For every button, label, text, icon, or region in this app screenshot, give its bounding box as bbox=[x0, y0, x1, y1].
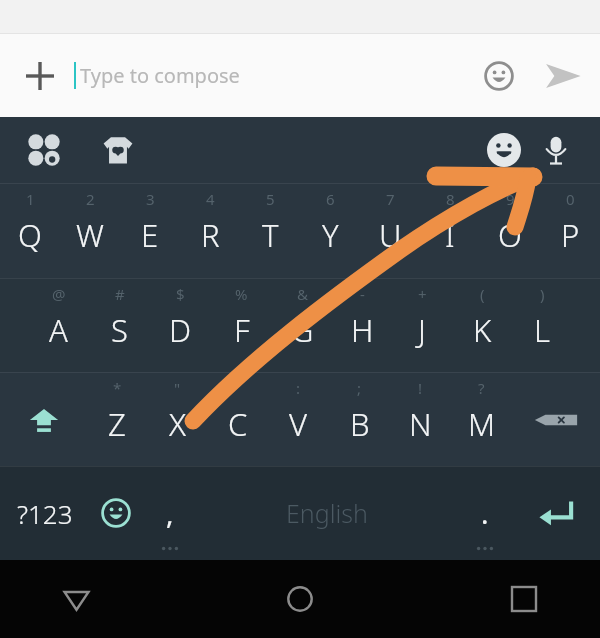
button[interactable]: 9 bbox=[480, 183, 540, 278]
button[interactable]: Add attachment bbox=[16, 52, 64, 100]
button[interactable]: 2 bbox=[60, 183, 120, 278]
staticText: H bbox=[351, 309, 374, 351]
button[interactable]: & bbox=[272, 278, 332, 372]
button[interactable]: 1 bbox=[0, 183, 60, 278]
staticText: E bbox=[141, 214, 159, 256]
button[interactable]: 5 bbox=[240, 183, 300, 278]
staticText: , bbox=[166, 494, 174, 532]
staticText: M bbox=[468, 403, 496, 445]
button[interactable]: - bbox=[332, 278, 392, 372]
staticText: $ bbox=[176, 284, 185, 304]
button[interactable]: 0 bbox=[540, 183, 600, 278]
staticText: F bbox=[234, 309, 250, 351]
staticText: ! bbox=[418, 378, 423, 398]
staticText: 0 bbox=[566, 189, 575, 209]
button[interactable]: Emoji keyboard bbox=[478, 124, 530, 176]
button[interactable]: 7 bbox=[360, 183, 420, 278]
staticText: ) bbox=[540, 284, 545, 304]
staticText: . bbox=[481, 494, 489, 532]
staticText: Y bbox=[322, 214, 339, 256]
staticText: D bbox=[169, 309, 192, 351]
button[interactable]: ( bbox=[452, 278, 512, 372]
staticText: ' bbox=[236, 378, 240, 398]
button[interactable]: Stickers bbox=[18, 124, 70, 176]
button[interactable]: Home bbox=[264, 563, 336, 635]
staticText: Q bbox=[18, 214, 42, 256]
button[interactable]: ; bbox=[329, 372, 390, 466]
button[interactable]: % bbox=[211, 278, 272, 372]
staticText: T bbox=[262, 214, 279, 256]
staticText: N bbox=[409, 403, 432, 445]
staticText: & bbox=[297, 284, 308, 304]
button[interactable]: Emoji bbox=[89, 466, 142, 560]
button[interactable]: : bbox=[268, 372, 329, 466]
button[interactable]: Enter bbox=[512, 466, 600, 560]
button[interactable]: Send bbox=[536, 49, 590, 103]
button[interactable]: + bbox=[392, 278, 452, 372]
staticText: V bbox=[289, 403, 308, 445]
button[interactable]: # bbox=[89, 278, 150, 372]
button[interactable]: ?123 bbox=[0, 466, 89, 560]
staticText: O bbox=[498, 214, 522, 256]
button[interactable]: 4 bbox=[180, 183, 240, 278]
staticText: 4 bbox=[206, 189, 215, 209]
button[interactable]: . bbox=[457, 466, 512, 560]
staticText: W bbox=[76, 214, 104, 256]
staticText: G bbox=[291, 309, 314, 351]
button[interactable]: ! bbox=[390, 372, 451, 466]
staticText: : bbox=[296, 378, 301, 398]
button[interactable]: $ bbox=[150, 278, 211, 372]
staticText: * bbox=[113, 378, 122, 398]
staticText: ; bbox=[357, 378, 362, 398]
button[interactable]: Voice input bbox=[530, 124, 582, 176]
staticText: English bbox=[286, 496, 368, 530]
staticText: A bbox=[49, 309, 68, 351]
button[interactable]: ? bbox=[451, 372, 512, 466]
staticText: C bbox=[228, 403, 248, 445]
staticText: # bbox=[115, 284, 125, 304]
staticText: 3 bbox=[146, 189, 155, 209]
staticText: - bbox=[360, 284, 365, 304]
button[interactable]: Emoji bbox=[474, 51, 524, 101]
button[interactable]: Shift bbox=[0, 372, 87, 466]
staticText: I bbox=[445, 214, 455, 256]
staticText: Type to compose bbox=[80, 62, 240, 89]
button[interactable]: , bbox=[142, 466, 197, 560]
staticText: @ bbox=[52, 284, 66, 304]
staticText: " bbox=[174, 378, 181, 398]
staticText: U bbox=[379, 214, 402, 256]
staticText: K bbox=[473, 309, 492, 351]
button[interactable]: 8 bbox=[420, 183, 480, 278]
button[interactable]: 6 bbox=[300, 183, 360, 278]
staticText: X bbox=[169, 403, 186, 445]
button[interactable]: 3 bbox=[120, 183, 180, 278]
staticText: P bbox=[561, 214, 580, 256]
staticText: Z bbox=[108, 403, 126, 445]
button[interactable]: English bbox=[197, 466, 457, 560]
staticText: + bbox=[418, 284, 427, 304]
staticText: ( bbox=[480, 284, 485, 304]
staticText: 7 bbox=[386, 189, 395, 209]
button[interactable]: Recents bbox=[488, 563, 560, 635]
button[interactable]: @ bbox=[28, 278, 89, 372]
staticText: % bbox=[235, 284, 248, 304]
button[interactable]: Backspace bbox=[512, 372, 600, 466]
staticText: 6 bbox=[326, 189, 335, 209]
button[interactable]: " bbox=[147, 372, 207, 466]
staticText: ?123 bbox=[17, 496, 73, 531]
staticText: 2 bbox=[86, 189, 95, 209]
button[interactable]: * bbox=[87, 372, 147, 466]
staticText: L bbox=[534, 309, 550, 351]
button[interactable]: Shirt stickers bbox=[92, 124, 144, 176]
staticText: 1 bbox=[26, 189, 35, 209]
staticText: S bbox=[111, 309, 128, 351]
staticText: 9 bbox=[506, 189, 515, 209]
button[interactable]: Back bbox=[40, 563, 112, 635]
button[interactable]: ' bbox=[207, 372, 268, 466]
button[interactable]: ) bbox=[512, 278, 572, 372]
staticText: B bbox=[350, 403, 370, 445]
staticText: ? bbox=[478, 378, 485, 398]
staticText: J bbox=[418, 309, 426, 351]
staticText: 5 bbox=[266, 189, 275, 209]
staticText: 8 bbox=[446, 189, 455, 209]
